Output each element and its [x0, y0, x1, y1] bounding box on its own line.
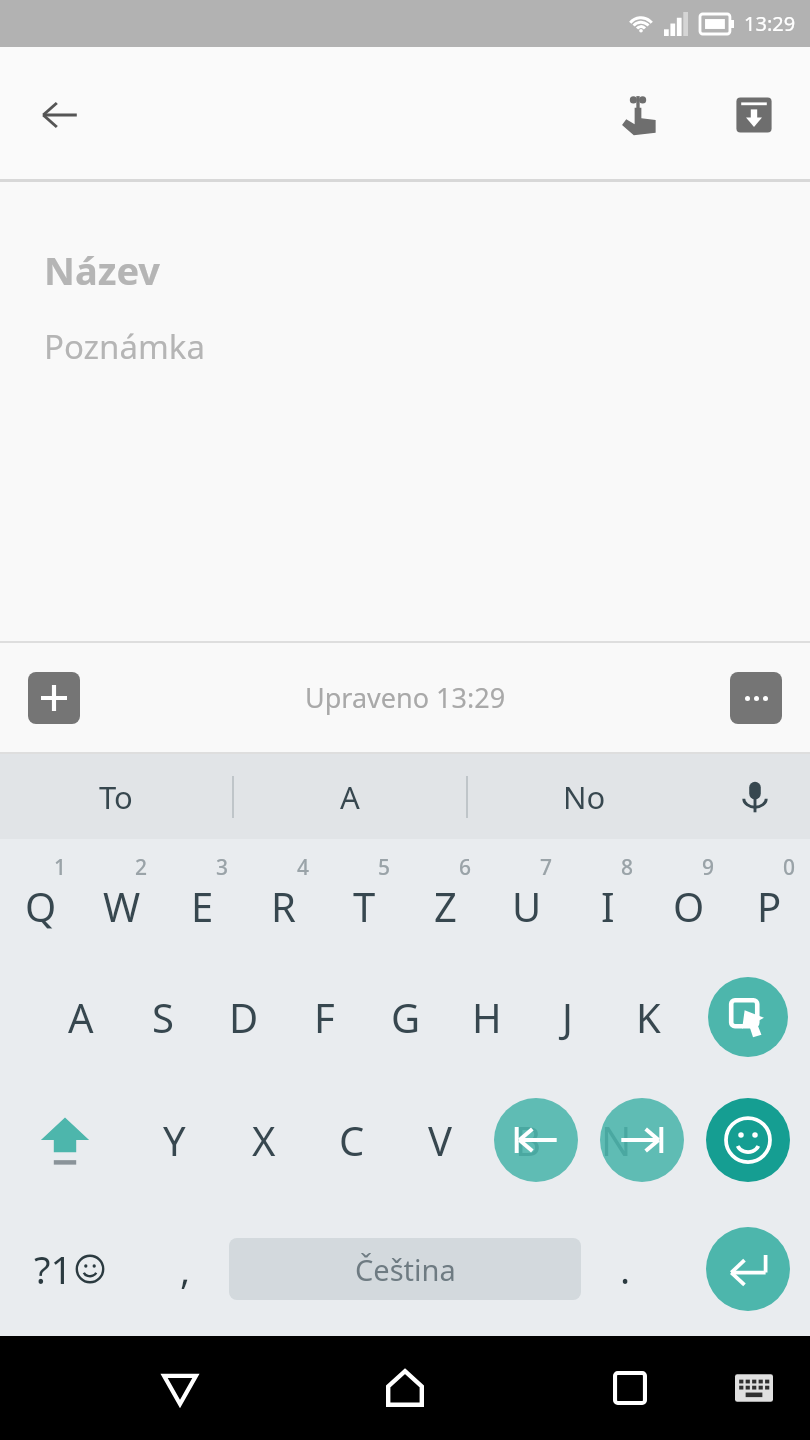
button[interactable]: Back: [24, 79, 96, 151]
button[interactable]: Symbols: [14, 1224, 124, 1314]
button[interactable]: C: [308, 1077, 396, 1202]
button[interactable]: H: [446, 957, 527, 1077]
staticText: R: [271, 879, 296, 933]
button[interactable]: E: [162, 839, 243, 957]
button[interactable]: X: [219, 1077, 308, 1202]
staticText: 0: [783, 853, 796, 882]
button[interactable]: Y: [130, 1077, 219, 1202]
button[interactable]: S: [122, 957, 203, 1077]
staticText: O: [673, 879, 705, 933]
button[interactable]: U: [486, 839, 567, 957]
staticText: 5: [378, 853, 391, 882]
staticText: D: [229, 990, 259, 1044]
button[interactable]: Čeština: [229, 1238, 581, 1300]
staticText: ?1: [34, 1243, 73, 1295]
button[interactable]: Emoji: [706, 1098, 790, 1182]
button[interactable]: Z: [405, 839, 486, 957]
staticText: Upraveno 13:29: [305, 679, 506, 716]
button[interactable]: Poznámka: [44, 324, 206, 369]
button[interactable]: L: [689, 957, 770, 1077]
button[interactable]: T: [324, 839, 405, 957]
staticText: 13:29: [744, 10, 796, 37]
button[interactable]: R: [243, 839, 324, 957]
button[interactable]: Recents: [590, 1348, 670, 1428]
button[interactable]: O: [648, 839, 729, 957]
button[interactable]: W: [81, 839, 162, 957]
staticText: 7: [540, 853, 553, 882]
button[interactable]: Hide keyboard: [140, 1348, 220, 1428]
button[interactable]: No: [468, 754, 700, 839]
staticText: ,: [180, 1243, 191, 1295]
button[interactable]: F: [284, 957, 365, 1077]
staticText: Q: [25, 879, 57, 933]
staticText: To: [99, 776, 133, 818]
staticText: Z: [434, 879, 457, 933]
button[interactable]: Název: [44, 244, 161, 296]
staticText: C: [339, 1113, 365, 1167]
button[interactable]: Move to end: [600, 1098, 684, 1182]
staticText: E: [191, 879, 214, 933]
button[interactable]: A: [234, 754, 466, 839]
staticText: B: [515, 1113, 541, 1167]
staticText: K: [636, 990, 661, 1044]
button[interactable]: Select text: [708, 977, 788, 1057]
staticText: U: [512, 879, 542, 933]
button[interactable]: Archive: [718, 79, 790, 151]
button[interactable]: Add: [28, 672, 80, 724]
button[interactable]: Enter: [706, 1227, 790, 1311]
button[interactable]: G: [365, 957, 446, 1077]
staticText: V: [428, 1113, 452, 1167]
staticText: N: [601, 1113, 632, 1167]
button[interactable]: N: [572, 1077, 660, 1202]
button[interactable]: More options: [730, 672, 782, 724]
staticText: A: [340, 776, 360, 818]
staticText: L: [719, 990, 740, 1044]
staticText: P: [757, 879, 782, 933]
staticText: 6: [459, 853, 472, 882]
button[interactable]: Shift: [0, 1077, 130, 1202]
staticText: G: [391, 990, 421, 1044]
button[interactable]: V: [396, 1077, 484, 1202]
staticText: F: [314, 990, 335, 1044]
staticText: 2: [135, 853, 148, 882]
staticText: 3: [216, 853, 229, 882]
staticText: X: [252, 1113, 276, 1167]
staticText: S: [152, 990, 174, 1044]
button[interactable]: Q: [0, 839, 81, 957]
staticText: 4: [297, 853, 310, 882]
button[interactable]: A: [40, 957, 122, 1077]
button[interactable]: P: [729, 839, 810, 957]
button[interactable]: J: [527, 957, 608, 1077]
button[interactable]: Switch keyboard: [724, 1358, 784, 1418]
staticText: Y: [163, 1113, 186, 1167]
staticText: T: [353, 879, 376, 933]
button[interactable]: Pin: [602, 79, 674, 151]
staticText: J: [562, 990, 573, 1044]
button[interactable]: D: [203, 957, 284, 1077]
button[interactable]: ,: [150, 1224, 220, 1314]
button[interactable]: Voice input: [700, 754, 810, 839]
button[interactable]: Move to start: [494, 1098, 578, 1182]
button[interactable]: Home: [365, 1348, 445, 1428]
button[interactable]: .: [590, 1224, 660, 1314]
staticText: 9: [702, 853, 715, 882]
staticText: I: [601, 879, 615, 933]
staticText: No: [563, 776, 606, 818]
staticText: 1: [54, 853, 67, 882]
staticText: W: [103, 879, 141, 933]
staticText: 8: [621, 853, 634, 882]
button[interactable]: I: [567, 839, 648, 957]
staticText: H: [472, 990, 502, 1044]
staticText: Čeština: [355, 1250, 456, 1289]
staticText: A: [68, 990, 94, 1044]
button[interactable]: K: [608, 957, 689, 1077]
button[interactable]: B: [484, 1077, 572, 1202]
button[interactable]: To: [0, 754, 232, 839]
staticText: .: [620, 1243, 631, 1295]
